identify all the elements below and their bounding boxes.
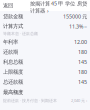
staticText: 180 [78, 48, 87, 56]
staticText: 最高额度 [3, 89, 23, 96]
staticText: 总还款额 [3, 79, 23, 85]
staticText: 按揭计算 45 甲 学位 房贷计算器 › [30, 0, 87, 11]
staticText: 12.00 [74, 38, 87, 46]
button[interactable]: 贷款金额 [0, 11, 90, 22]
staticText: 11.3% ~ [69, 23, 87, 30]
button[interactable]: 年利率 [0, 37, 90, 47]
staticText: 贷款金额 [3, 13, 23, 20]
staticText: 利息总额 [3, 59, 23, 65]
staticText: 还款期 [3, 49, 18, 55]
button[interactable]: 计算方式 [0, 22, 90, 37]
staticText: 提前还款 · 按月付息 · 到期还本 [3, 98, 57, 103]
staticText: 145 [78, 78, 87, 86]
staticText: 返回 [3, 2, 13, 9]
staticText: 180 [78, 68, 87, 76]
button[interactable]: 还款期 [0, 47, 90, 57]
staticText: 145 [78, 58, 87, 66]
button[interactable]: 总还款额 [0, 77, 90, 87]
button[interactable]: 利息总额 [0, 57, 90, 67]
button[interactable]: 返回 [0, 0, 16, 11]
staticText: 年利率 [3, 39, 18, 45]
staticText: 2,040 元 › [71, 98, 87, 103]
button[interactable]: 上限额度 [0, 67, 90, 77]
staticText: 上限额度 [3, 69, 23, 75]
button[interactable]: 按揭计算 45 甲 学位 房贷计算器 › [27, 0, 90, 11]
button[interactable]: 最高额度 [0, 87, 90, 105]
staticText: 155000 元 [63, 13, 87, 20]
staticText: 等额本息 · 还款总额 [3, 31, 38, 36]
staticText: 计算方式 [3, 23, 23, 30]
